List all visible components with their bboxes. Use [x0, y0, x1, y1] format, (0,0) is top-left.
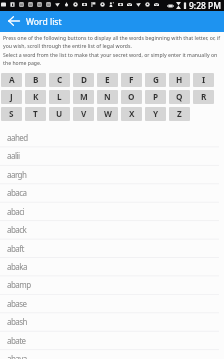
staticText: K — [33, 91, 39, 102]
staticText: F — [129, 74, 134, 85]
button[interactable]: aback — [0, 221, 224, 239]
button[interactable]: abamp — [0, 276, 224, 294]
staticText: U — [56, 108, 63, 119]
button[interactable]: abase — [0, 295, 224, 313]
button[interactable]: B — [25, 73, 46, 87]
button[interactable]: A — [1, 73, 22, 87]
button[interactable]: P — [145, 90, 166, 104]
button[interactable]: abaci — [0, 203, 224, 221]
button[interactable]: J — [1, 90, 22, 104]
button[interactable]: T — [25, 107, 46, 121]
button[interactable]: M — [73, 90, 94, 104]
button[interactable]: H — [169, 73, 190, 87]
staticText: B — [33, 74, 39, 85]
button[interactable]: N — [97, 90, 118, 104]
button[interactable]: abaya — [0, 350, 224, 359]
button[interactable]: V — [73, 107, 94, 121]
staticText: X — [129, 108, 135, 119]
staticText: H — [176, 74, 183, 85]
staticText: G — [153, 74, 159, 85]
button[interactable]: G — [145, 73, 166, 87]
staticText: Q — [176, 91, 183, 102]
staticText: P — [153, 91, 159, 102]
button[interactable]: aahed — [0, 129, 224, 147]
button[interactable]: F — [121, 73, 142, 87]
staticText: abase — [7, 298, 27, 309]
staticText: I — [202, 74, 206, 85]
button[interactable]: X — [121, 107, 142, 121]
staticText: S — [9, 108, 14, 119]
staticText: D — [81, 74, 87, 85]
button[interactable]: abaka — [0, 258, 224, 276]
button[interactable]: D — [73, 73, 94, 87]
staticText: abaci — [7, 206, 25, 217]
staticText: abamp — [7, 279, 31, 290]
staticText: abaca — [7, 187, 27, 198]
button[interactable]: abaft — [0, 240, 224, 258]
button[interactable]: abate — [0, 332, 224, 350]
button[interactable]: U — [49, 107, 70, 121]
staticText: abaya — [7, 353, 27, 359]
staticText: 9:28 PM — [189, 0, 222, 11]
staticText: abaft — [7, 243, 24, 254]
staticText: L — [57, 91, 62, 102]
button[interactable]: Z — [169, 107, 190, 121]
staticText: M — [80, 91, 88, 102]
staticText: Y — [153, 108, 159, 119]
staticText: aback — [7, 224, 27, 235]
staticText: N — [104, 91, 111, 102]
staticText: Press one of the following buttons to di… — [3, 35, 222, 49]
staticText: E — [105, 74, 110, 85]
button[interactable]: abaca — [0, 184, 224, 202]
staticText: T — [33, 108, 38, 119]
staticText: abash — [7, 316, 27, 327]
button[interactable]: W — [97, 107, 118, 121]
button[interactable]: Y — [145, 107, 166, 121]
button[interactable]: K — [25, 90, 46, 104]
staticText: Word list — [26, 16, 62, 28]
button[interactable]: Back — [5, 13, 23, 31]
staticText: aahed — [7, 132, 28, 143]
staticText: R — [201, 91, 207, 102]
button[interactable]: aalii — [0, 147, 224, 165]
staticText: Z — [177, 108, 182, 119]
button[interactable]: O — [121, 90, 142, 104]
staticText: abaka — [7, 261, 27, 272]
button[interactable]: E — [97, 73, 118, 87]
button[interactable]: R — [193, 90, 214, 104]
button[interactable]: L — [49, 90, 70, 104]
staticText: aalii — [7, 150, 20, 161]
staticText: C — [57, 74, 63, 85]
staticText: O — [128, 91, 135, 102]
staticText: abate — [7, 335, 26, 346]
staticText: V — [81, 108, 87, 119]
staticText: Select a word from the list to make that… — [3, 52, 222, 66]
button[interactable]: aargh — [0, 166, 224, 184]
staticText: W — [104, 108, 112, 119]
staticText: J — [10, 91, 13, 102]
button[interactable]: Q — [169, 90, 190, 104]
staticText: aargh — [7, 169, 27, 180]
staticText: A — [9, 74, 15, 85]
button[interactable]: I — [193, 73, 214, 87]
button[interactable]: abash — [0, 313, 224, 331]
button[interactable]: C — [49, 73, 70, 87]
button[interactable]: S — [1, 107, 22, 121]
